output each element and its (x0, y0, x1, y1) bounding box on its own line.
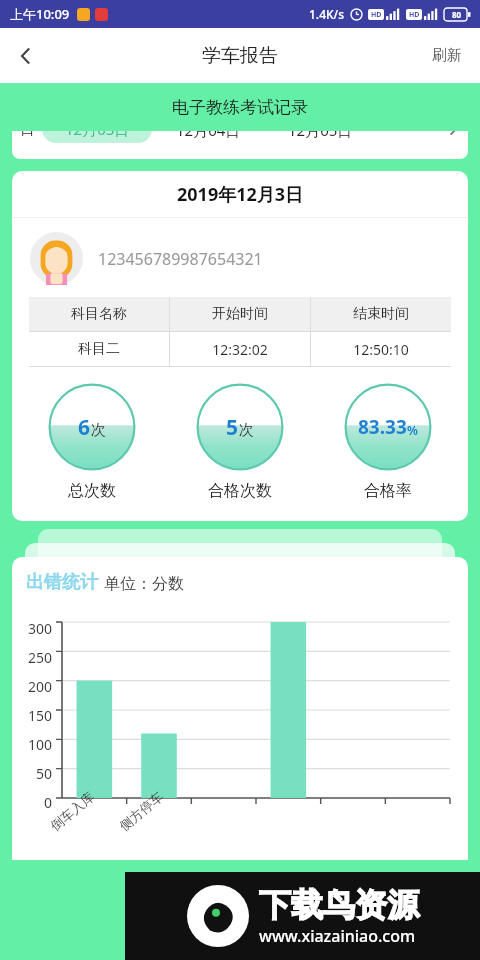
staticText: 200 (28, 677, 53, 696)
staticText: 合格次数 (208, 481, 272, 501)
staticText: 12月03日 (65, 131, 130, 139)
staticText: 次 (91, 421, 106, 440)
staticText: 250 (28, 648, 53, 667)
staticText: HD (371, 10, 382, 20)
button[interactable]: 12月05日 (264, 131, 376, 159)
staticText: 80 (452, 9, 462, 20)
staticText: 科目名称 (71, 305, 127, 323)
staticText: 12:50:10 (353, 340, 409, 359)
staticText: 12月04日 (176, 131, 241, 140)
staticText: 100 (28, 735, 53, 754)
staticText: 12:32:02 (212, 340, 268, 359)
staticText: 0 (44, 793, 53, 812)
staticText: 日 (20, 131, 35, 139)
staticText: 12月05日 (288, 131, 353, 140)
staticText: www.xiazainiao.com (259, 925, 416, 947)
button[interactable]: 12月04日 (152, 131, 264, 159)
staticText: 1.4K/s (309, 6, 345, 22)
staticText: HD (409, 10, 420, 20)
staticText: 83.33 (358, 414, 407, 440)
staticText: 下载鸟资源 (259, 885, 419, 925)
button[interactable]: 刷新 (414, 28, 480, 83)
staticText: 合格率 (364, 481, 412, 501)
staticText: 次 (239, 421, 254, 440)
staticText: 上午10:09 (10, 5, 70, 23)
staticText: 结束时间 (353, 305, 409, 323)
staticText: 侧方停车 (116, 788, 166, 834)
staticText: 单位：分数 (104, 574, 184, 594)
staticText: 150 (28, 706, 53, 725)
staticText: 总次数 (68, 481, 116, 501)
staticText: 电子教练考试记录 (172, 97, 308, 118)
button[interactable]: 12月03日 (42, 131, 152, 159)
staticText: 开始时间 (212, 305, 268, 323)
staticText: 科目二 (78, 340, 120, 358)
button[interactable]: Back (0, 28, 52, 83)
staticText: 学车报告 (202, 44, 278, 68)
staticText: 300 (28, 619, 53, 638)
button[interactable]: 日 (12, 131, 42, 159)
staticText: 2019年12月3日 (177, 182, 304, 207)
button[interactable]: Next dates (438, 131, 468, 159)
staticText: 123456789987654321 (98, 248, 263, 270)
staticText: 出错统计 (26, 571, 98, 594)
staticText: 倒车入库 (47, 788, 97, 834)
staticText: % (407, 422, 418, 438)
staticText: 刷新 (432, 46, 462, 65)
staticText: 50 (36, 764, 53, 783)
staticText: 6 (78, 413, 91, 442)
staticText: 5 (226, 413, 239, 442)
